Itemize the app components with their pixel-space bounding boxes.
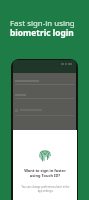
staticText: Fast sign-in using [10,18,75,29]
staticText: Want to sign in faster using Touch ID? [24,168,66,179]
other: Fingerprint [39,149,51,162]
staticText: biometric login [10,27,74,38]
staticText: You can change preferences later in the … [21,185,70,193]
